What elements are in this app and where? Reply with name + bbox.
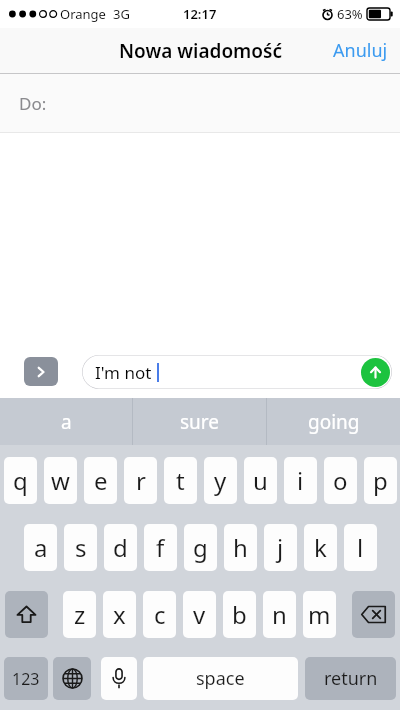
button[interactable]: o <box>324 457 357 504</box>
button[interactable]: r <box>124 457 157 504</box>
staticText: a <box>34 531 48 564</box>
staticText: c <box>154 598 166 631</box>
staticText: g <box>193 531 208 564</box>
button[interactable]: z <box>63 591 96 638</box>
button[interactable]: n <box>263 591 296 638</box>
staticText: i <box>297 464 304 497</box>
button[interactable]: More options <box>24 357 58 386</box>
button[interactable]: l <box>344 524 377 571</box>
button[interactable]: t <box>164 457 197 504</box>
button[interactable]: q <box>4 457 37 504</box>
staticText: Nowa wiadomość <box>119 38 282 64</box>
button[interactable]: Anuluj <box>321 30 400 71</box>
staticText: Orange <box>60 5 106 23</box>
button[interactable]: d <box>104 524 137 571</box>
button[interactable]: p <box>364 457 397 504</box>
button[interactable]: a <box>24 524 57 571</box>
staticText: x <box>113 598 126 631</box>
button[interactable]: g <box>184 524 217 571</box>
staticText: Anuluj <box>333 38 388 63</box>
staticText: return <box>324 666 378 691</box>
staticText: 123 <box>12 668 40 690</box>
button[interactable]: m <box>303 591 336 638</box>
button[interactable]: u <box>244 457 277 504</box>
button[interactable]: Backspace <box>352 591 395 638</box>
button[interactable]: e <box>84 457 117 504</box>
button[interactable]: c <box>143 591 176 638</box>
button[interactable]: going <box>267 398 400 445</box>
staticText: 12:17 <box>183 5 217 23</box>
staticText: o <box>333 464 348 497</box>
staticText: space <box>196 666 245 691</box>
button[interactable]: Do: <box>0 74 400 132</box>
button[interactable]: return <box>305 657 396 700</box>
staticText: s <box>75 531 87 564</box>
staticText: 3G <box>113 5 130 23</box>
staticText: Do: <box>19 92 47 115</box>
staticText: y <box>214 464 227 497</box>
button[interactable]: w <box>44 457 77 504</box>
button[interactable]: 123 <box>4 657 48 700</box>
button[interactable]: sure <box>133 398 266 445</box>
staticText: b <box>232 598 247 631</box>
button[interactable]: f <box>144 524 177 571</box>
button[interactable]: b <box>223 591 256 638</box>
staticText: h <box>233 531 248 564</box>
staticText: sure <box>180 409 220 435</box>
button[interactable]: space <box>143 657 298 700</box>
staticText: p <box>373 464 388 497</box>
button[interactable]: y <box>204 457 237 504</box>
staticText: f <box>156 531 165 564</box>
staticText: d <box>113 531 128 564</box>
staticText: n <box>272 598 287 631</box>
staticText: w <box>51 464 70 497</box>
staticText: q <box>13 464 28 497</box>
staticText: v <box>193 598 206 631</box>
staticText: a <box>61 409 72 435</box>
button[interactable]: Dictate <box>101 657 137 700</box>
staticText: going <box>308 409 360 435</box>
button[interactable]: j <box>264 524 297 571</box>
staticText: j <box>277 531 284 564</box>
button[interactable]: k <box>304 524 337 571</box>
button[interactable]: x <box>103 591 136 638</box>
button[interactable]: a <box>0 398 132 445</box>
button[interactable]: v <box>183 591 216 638</box>
staticText: t <box>176 464 185 497</box>
staticText: 63% <box>337 5 363 23</box>
button[interactable]: Shift <box>5 591 48 638</box>
button[interactable]: h <box>224 524 257 571</box>
staticText: m <box>308 598 331 631</box>
button[interactable]: Change keyboard language <box>53 657 91 700</box>
staticText: z <box>74 598 86 631</box>
staticText: l <box>357 531 364 564</box>
button[interactable]: I'm not <box>82 355 392 389</box>
staticText: e <box>94 464 108 497</box>
button[interactable]: Send <box>361 358 390 387</box>
button[interactable]: i <box>284 457 317 504</box>
staticText: I'm not <box>95 361 152 384</box>
staticText: k <box>314 531 327 564</box>
staticText: u <box>253 464 268 497</box>
staticText: r <box>136 464 146 497</box>
button[interactable]: s <box>64 524 97 571</box>
